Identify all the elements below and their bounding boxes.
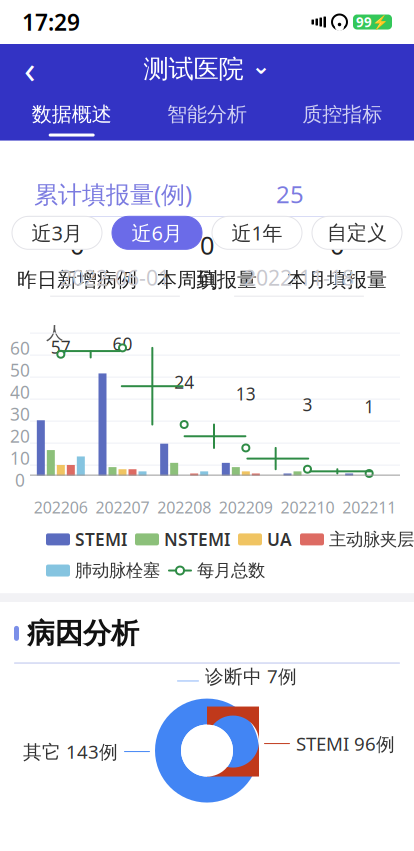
staticText: 0 (330, 228, 344, 262)
staticText: 57 (51, 335, 71, 358)
staticText: 肺动脉栓塞 (75, 560, 160, 581)
button[interactable]: 近3月 (12, 216, 102, 249)
staticText: 1 (364, 395, 374, 418)
staticText: 202207 (95, 497, 149, 518)
staticText: 主动脉夹层 (329, 529, 414, 550)
staticText: 202211 (342, 497, 396, 518)
staticText: NSTEMI (164, 528, 230, 551)
staticText: 近3月 (31, 220, 82, 246)
staticText: 13 (236, 382, 256, 405)
staticText: 本月填报量 (287, 268, 387, 292)
staticText: 202208 (157, 497, 211, 518)
staticText: 202209 (219, 497, 273, 518)
staticText: 24 (174, 371, 194, 394)
staticText: ‹ (24, 44, 36, 94)
button[interactable]: 智能分析 (139, 98, 275, 141)
staticText: 其它 143例 (23, 739, 118, 764)
staticText: 60 (112, 332, 132, 355)
staticText: 近6月 (131, 220, 182, 246)
staticText: 诊断中 7例 (205, 664, 297, 688)
staticText: 自定义 (327, 220, 387, 245)
button[interactable]: 测试医院 (137, 49, 276, 89)
staticText: 2022-06-01 (60, 263, 170, 292)
staticText: 2022-11-18 (244, 263, 354, 292)
staticText: 40 (10, 381, 30, 404)
staticText: 智能分析 (167, 102, 247, 127)
staticText: 到 (196, 267, 217, 293)
staticText: 累计填报量(例) (34, 178, 192, 210)
staticText: 0 (200, 228, 214, 262)
staticText: ⌄ (251, 53, 270, 79)
staticText: 昨日新增病例 (17, 268, 137, 292)
staticText: STEMI 96例 (296, 731, 395, 756)
button[interactable]: 近1年 (212, 216, 302, 249)
button[interactable]: 数据概述 (4, 98, 139, 141)
staticText: 病因分析 (27, 616, 139, 651)
staticText: 测试医院 (143, 53, 243, 84)
staticText: 202206 (34, 497, 88, 518)
staticText: 20 (10, 425, 30, 448)
staticText: 30 (10, 403, 30, 426)
button[interactable]: 近6月 (112, 216, 202, 249)
staticText: 60 (10, 337, 30, 360)
staticText: 0 (15, 469, 25, 492)
staticText: 数据概述 (32, 102, 112, 127)
staticText: 0 (70, 228, 84, 262)
button[interactable]: Back (8, 47, 52, 91)
staticText: 本周填报量 (157, 268, 257, 292)
button[interactable]: 自定义 (312, 216, 402, 249)
button[interactable]: 质控指标 (275, 98, 410, 141)
staticText: 50 (10, 359, 30, 382)
staticText: 3 (302, 393, 312, 416)
staticText: 质控指标 (302, 102, 382, 127)
staticText: STEMI (75, 528, 127, 551)
staticText: 近1年 (231, 220, 282, 246)
staticText: 每月总数 (197, 560, 265, 581)
staticText: 10 (10, 447, 30, 470)
staticText: 99⚡ (356, 13, 389, 31)
staticText: UA (267, 528, 292, 551)
staticText: 人 (46, 322, 63, 344)
staticText: 17:29 (22, 7, 80, 37)
staticText: 25 (276, 178, 304, 210)
staticText: 202210 (280, 497, 334, 518)
